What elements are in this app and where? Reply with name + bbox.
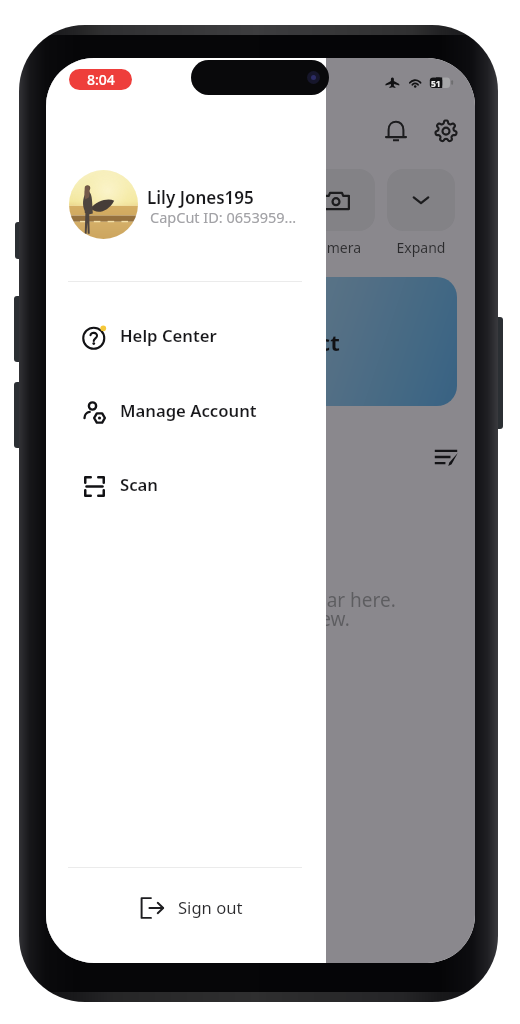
button[interactable]: New project <box>170 277 457 406</box>
button[interactable]: Expand <box>387 169 455 231</box>
button[interactable]: Help Center <box>46 315 326 359</box>
staticText: Lily Jones195 <box>147 186 254 209</box>
button[interactable]: Notifications <box>383 118 409 144</box>
staticText: New project <box>207 327 340 357</box>
staticText: Manage Account <box>120 399 257 422</box>
button[interactable]: Scan <box>46 464 326 508</box>
staticText: Camera <box>296 238 375 257</box>
staticText: 8:04 <box>87 70 115 89</box>
staticText: Your projects will appear here. <box>86 587 435 613</box>
staticText: Sign out <box>178 896 243 919</box>
button[interactable]: Camera <box>296 169 375 231</box>
staticText: 51 <box>431 78 441 90</box>
button[interactable]: Manage Account <box>46 390 326 434</box>
staticText: Tap + to start a new. <box>86 606 435 632</box>
staticText: CapCut ID: 0653959... <box>150 207 297 227</box>
staticText: Expand <box>387 238 455 257</box>
button[interactable]: Settings <box>433 118 459 144</box>
button[interactable]: Lily Jones195 <box>46 164 326 244</box>
staticText: Help Center <box>120 324 217 347</box>
staticText: Scan <box>120 473 158 496</box>
button[interactable]: Edit list <box>432 443 460 471</box>
button[interactable]: Sign out <box>46 885 326 931</box>
